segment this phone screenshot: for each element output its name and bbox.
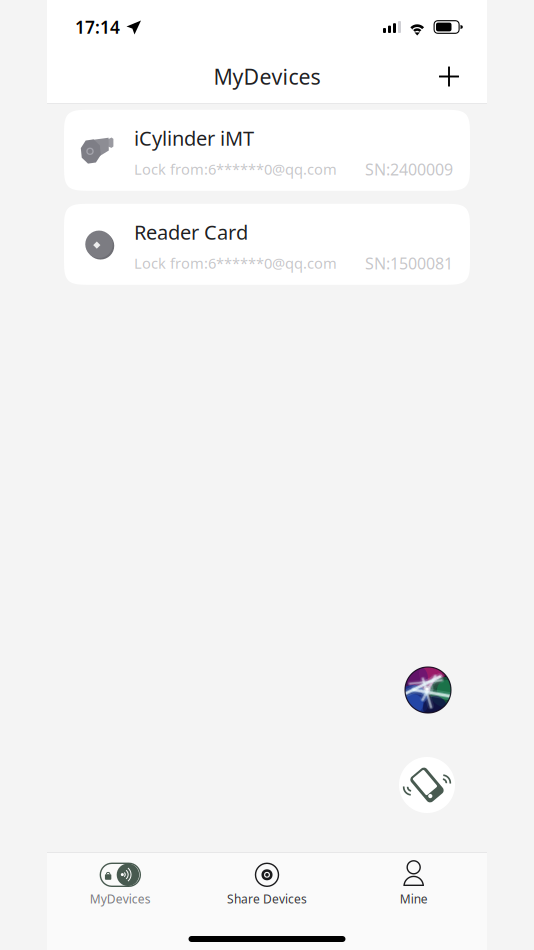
staticText: Lock from:6******0@qq.com [134,253,337,273]
button[interactable]: Add device [424,54,474,98]
staticText: iCylinder iMT [134,125,254,151]
staticText: 17:14 [75,15,120,38]
button[interactable]: iCylinder iMT [64,110,470,191]
button[interactable]: Shake to unlock [399,757,455,813]
button[interactable]: Reader Card [64,204,470,285]
button[interactable]: Mine [340,860,487,910]
button[interactable]: MyDevices [47,860,194,910]
staticText: SN:2400009 [365,159,453,180]
staticText: MyDevices [90,891,151,907]
staticText: SN:1500081 [365,253,453,274]
button[interactable]: Share Devices [194,860,340,910]
staticText: Share Devices [227,891,307,907]
staticText: Lock from:6******0@qq.com [134,159,337,179]
staticText: Reader Card [134,219,248,245]
staticText: MyDevices [213,62,320,91]
staticText: Mine [400,891,428,907]
button[interactable]: Siri [402,664,454,716]
